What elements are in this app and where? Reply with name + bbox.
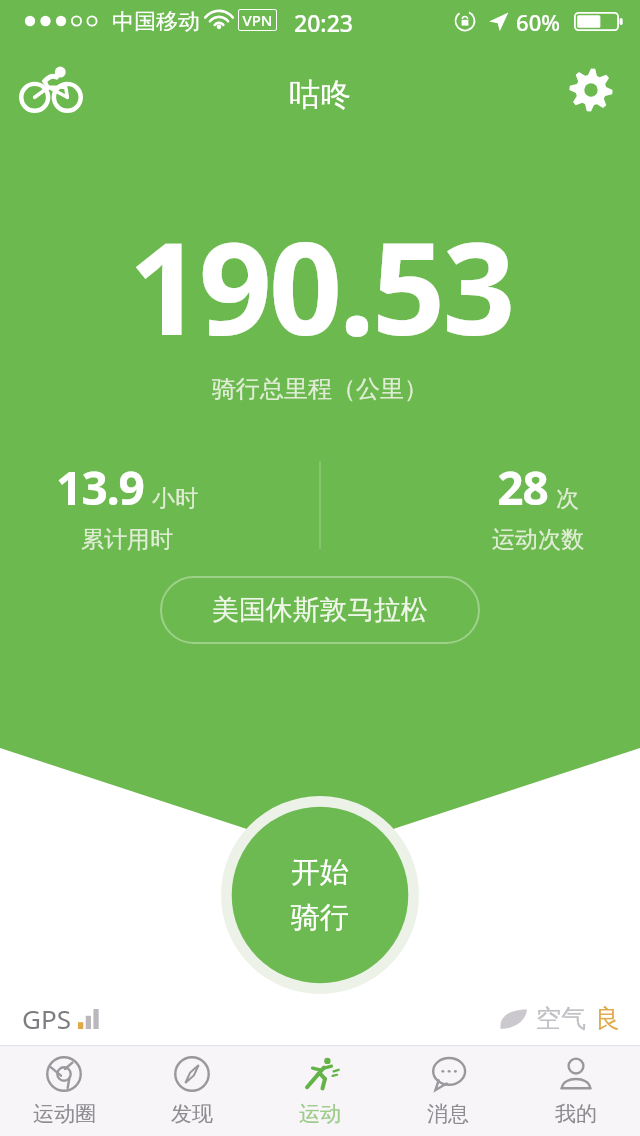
button[interactable]: Cycling sport type [8, 54, 94, 126]
button[interactable]: 运动圈 [0, 1046, 128, 1136]
staticText: VPN [242, 10, 273, 30]
staticText: 13.9 [56, 456, 144, 519]
staticText: 运动 [299, 1101, 341, 1127]
staticText: 我的 [555, 1101, 597, 1127]
staticText: 咕咚 [289, 75, 351, 114]
staticText: 良 [595, 1003, 620, 1034]
button[interactable]: GPS [22, 1001, 100, 1036]
staticText: 消息 [427, 1101, 469, 1127]
staticText: 发现 [171, 1101, 213, 1127]
staticText: 开始 [291, 854, 349, 891]
staticText: 骑行总里程（公里） [212, 374, 428, 404]
button[interactable]: 消息 [384, 1046, 512, 1136]
staticText: 美国休斯敦马拉松 [212, 593, 428, 627]
staticText: GPS [22, 1001, 71, 1036]
staticText: 20:23 [294, 7, 353, 38]
button[interactable]: 开始 [221, 796, 419, 994]
staticText: 中国移动 [112, 8, 200, 36]
button[interactable]: Settings [554, 54, 628, 126]
staticText: 空气 [536, 1003, 586, 1034]
button[interactable]: 运动 [256, 1046, 384, 1136]
staticText: 运动次数 [492, 525, 584, 554]
staticText: 28 [497, 456, 548, 519]
staticText: 小时 [152, 484, 198, 513]
staticText: 运动圈 [33, 1101, 96, 1127]
staticText: 骑行 [291, 899, 349, 936]
button[interactable]: 发现 [128, 1046, 256, 1136]
staticText: 60% [516, 7, 560, 37]
staticText: 累计用时 [81, 525, 173, 554]
staticText: 次 [556, 484, 579, 513]
button[interactable]: 美国休斯敦马拉松 [160, 576, 480, 644]
button[interactable]: 空气 [499, 1003, 620, 1034]
staticText: 190.53 [128, 198, 513, 372]
button[interactable]: 我的 [512, 1046, 640, 1136]
